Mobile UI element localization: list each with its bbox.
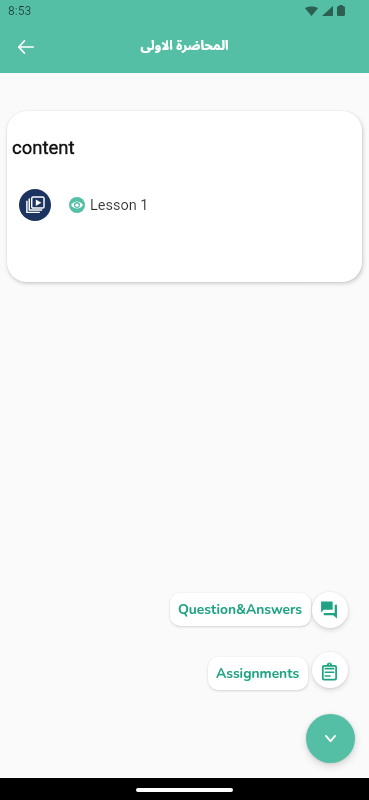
button[interactable]: Back [6,27,46,67]
button[interactable]: Assignments [208,657,308,690]
staticText: content [12,137,75,159]
staticText: المحاضرة الاولى [140,32,229,59]
staticText: Question&Answers [178,600,303,619]
staticText: Assignments [216,664,300,683]
staticText: 8:53 [8,4,32,18]
button[interactable]: Close menu [306,714,355,763]
staticText: Lesson 1 [90,197,149,214]
button[interactable]: Question&Answers [312,592,348,628]
button[interactable]: Assignments [312,652,348,688]
button[interactable]: Question&Answers [170,593,311,626]
button[interactable]: Lesson 1 [7,181,362,229]
